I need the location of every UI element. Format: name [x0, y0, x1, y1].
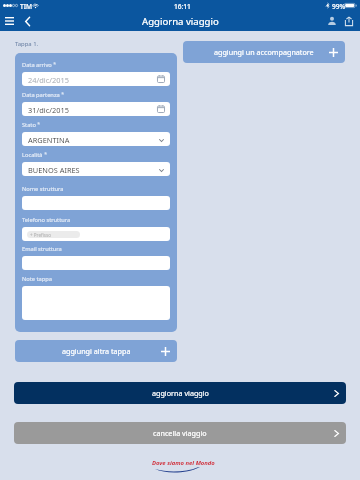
staticText: aggiungi un accompagnatore: [214, 47, 314, 57]
staticText: + Prefisso: [30, 232, 51, 238]
button[interactable]: Indietro: [19, 12, 36, 30]
button[interactable]: Menu: [1, 12, 18, 30]
button[interactable]: 24/dic/2015: [22, 72, 170, 86]
staticText: Dove siamo nel Mondo: [152, 459, 215, 467]
staticText: Stato: [22, 121, 36, 128]
button[interactable]: Condividi: [340, 12, 358, 30]
staticText: 16:11: [174, 2, 191, 11]
staticText: Località: [22, 151, 43, 158]
staticText: Nome struttura: [22, 185, 64, 192]
button[interactable]: aggiungi un accompagnatore: [183, 41, 345, 63]
button[interactable]: Profilo: [323, 12, 341, 30]
button[interactable]: [22, 196, 170, 210]
button[interactable]: [22, 286, 170, 320]
staticText: Email struttura: [22, 245, 62, 252]
staticText: TIM: [20, 2, 33, 11]
button[interactable]: + Prefisso: [22, 227, 170, 241]
button[interactable]: ARGENTINA: [22, 132, 170, 146]
button[interactable]: [22, 256, 170, 270]
staticText: Note tappa: [22, 275, 52, 282]
staticText: 24/dic/2015: [28, 75, 69, 85]
staticText: *: [36, 121, 41, 128]
staticText: Data arrivo: [22, 61, 52, 68]
button[interactable]: 31/dic/2015: [22, 102, 170, 116]
button[interactable]: BUENOS AIRES: [22, 162, 170, 176]
staticText: aggiorna viaggio: [152, 388, 209, 398]
staticText: Aggiorna viaggio: [142, 15, 219, 28]
staticText: Tappa 1.: [15, 40, 39, 48]
button[interactable]: cancella viaggio: [14, 422, 346, 444]
staticText: cancella viaggio: [153, 428, 207, 438]
staticText: aggiungi altra tappa: [62, 346, 131, 356]
staticText: 99%: [332, 2, 346, 11]
staticText: *: [52, 61, 57, 68]
staticText: Data partenza: [22, 91, 60, 98]
button[interactable]: aggiorna viaggio: [14, 382, 346, 404]
staticText: *: [60, 91, 65, 98]
button[interactable]: aggiungi altra tappa: [15, 340, 177, 362]
staticText: BUENOS AIRES: [28, 165, 80, 175]
staticText: Telefono struttura: [22, 216, 71, 223]
staticText: 31/dic/2015: [28, 105, 69, 115]
staticText: ARGENTINA: [28, 135, 70, 145]
staticText: *: [43, 151, 48, 158]
